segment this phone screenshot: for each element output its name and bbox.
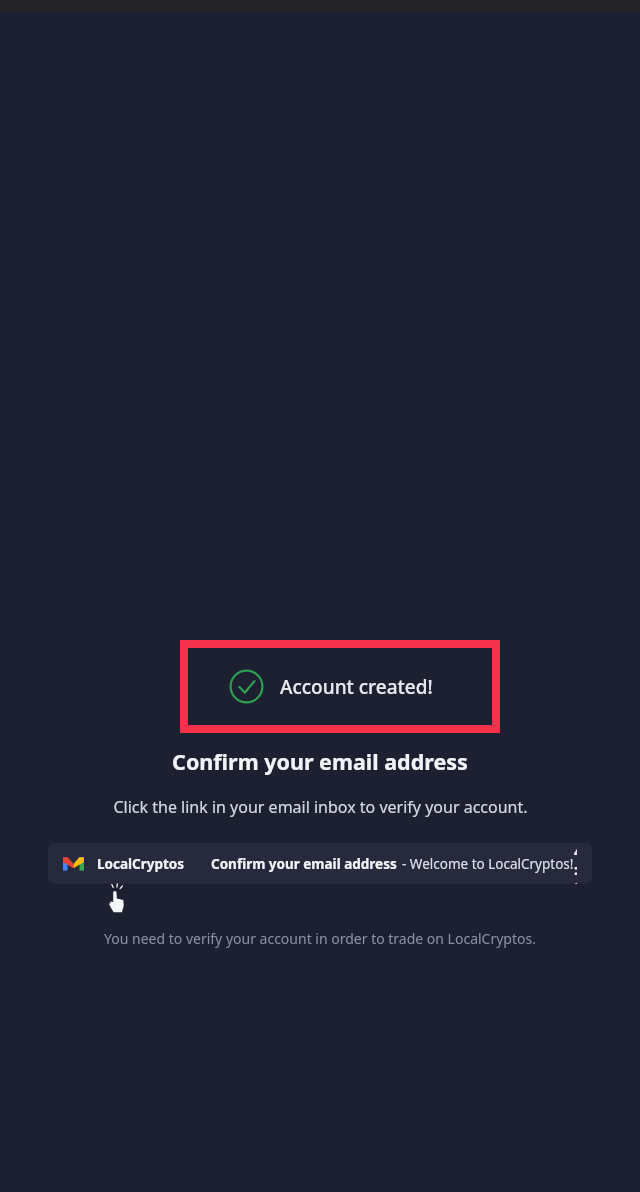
staticText: Click the link in your email inbox to ve… (113, 796, 528, 818)
staticText: Confirm your email address (211, 855, 397, 873)
staticText: Confirm your email address (172, 747, 468, 776)
button[interactable]: LocalCryptos (48, 843, 592, 884)
button[interactable]: Account created! (180, 640, 500, 733)
other: Tap email link (104, 884, 127, 913)
staticText: Account created! (280, 674, 433, 700)
staticText: - Welcome to LocalCryptos! (402, 855, 574, 873)
staticText: 4:27 PM (574, 843, 577, 884)
staticText: LocalCryptos (97, 855, 185, 873)
staticText: You need to verify your account in order… (104, 929, 536, 948)
